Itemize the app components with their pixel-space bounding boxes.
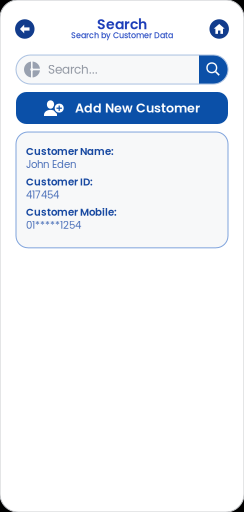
staticText: Customer Name: [26,144,114,159]
button[interactable]: Home [207,17,231,41]
staticText: Add New Customer [75,99,200,117]
button[interactable]: Back [13,17,37,41]
staticText: Search by Customer Data [71,30,173,41]
staticText: Search... [48,61,98,78]
staticText: Customer Mobile: [26,205,117,219]
staticText: 417454 [26,188,59,202]
staticText: 01*****1254 [26,218,81,232]
staticText: John Eden [26,157,76,172]
button[interactable]: Search... [16,55,228,84]
staticText: Search [97,14,147,34]
staticText: Customer ID: [26,175,93,189]
button[interactable]: Add New Customer [16,92,228,124]
